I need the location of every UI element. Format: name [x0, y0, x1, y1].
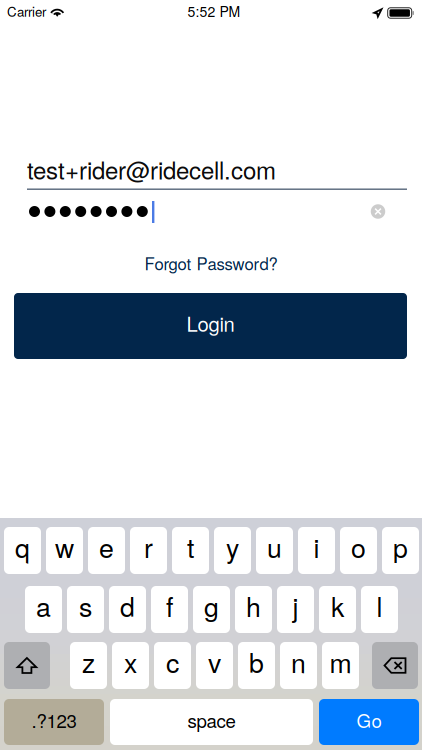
button[interactable]: a — [25, 586, 62, 633]
staticText: h — [246, 586, 261, 625]
button[interactable]: h — [235, 586, 272, 633]
staticText: r — [144, 527, 153, 566]
staticText: y — [226, 527, 239, 566]
staticText: z — [82, 642, 95, 681]
staticText: m — [329, 642, 351, 681]
staticText: l — [376, 586, 382, 625]
button[interactable]: u — [256, 527, 293, 574]
button[interactable]: x — [112, 642, 149, 689]
button[interactable]: z — [70, 642, 107, 689]
button[interactable]: y — [214, 527, 251, 574]
button[interactable]: .?123 — [4, 699, 104, 745]
button[interactable]: l — [361, 586, 398, 633]
staticText: a — [36, 586, 51, 625]
button[interactable]: p — [382, 527, 419, 574]
button[interactable]: r — [130, 527, 167, 574]
button[interactable]: b — [238, 642, 275, 689]
staticText: p — [393, 527, 408, 566]
button[interactable]: c — [154, 642, 191, 689]
button[interactable]: Forgot Password? — [131, 250, 291, 276]
button[interactable]: Delete — [372, 642, 418, 689]
staticText: x — [124, 642, 137, 681]
button[interactable]: Go — [319, 699, 419, 745]
staticText: u — [267, 527, 282, 566]
button[interactable]: e — [88, 527, 125, 574]
staticText: e — [99, 527, 114, 566]
button[interactable]: i — [298, 527, 335, 574]
button[interactable]: s — [67, 586, 104, 633]
button[interactable]: q — [4, 527, 41, 574]
staticText: w — [55, 527, 74, 566]
button[interactable]: v — [196, 642, 233, 689]
staticText: i — [313, 527, 319, 566]
button[interactable]: t — [172, 527, 209, 574]
button[interactable]: n — [280, 642, 317, 689]
staticText: f — [166, 586, 173, 625]
button[interactable]: g — [193, 586, 230, 633]
staticText: Login — [186, 308, 234, 337]
staticText: Forgot Password? — [144, 251, 277, 275]
staticText: n — [291, 642, 306, 681]
staticText: v — [208, 642, 221, 681]
staticText: j — [292, 586, 298, 625]
button[interactable]: Login — [14, 293, 407, 359]
button[interactable]: d — [109, 586, 146, 633]
staticText: q — [15, 527, 30, 566]
staticText: g — [204, 586, 219, 625]
staticText: k — [331, 586, 344, 625]
staticText: c — [166, 642, 179, 681]
staticText: d — [120, 586, 135, 625]
button[interactable]: Shift — [4, 642, 50, 689]
button[interactable]: f — [151, 586, 188, 633]
staticText: o — [351, 527, 366, 566]
staticText: Carrier — [7, 1, 46, 21]
staticText: b — [249, 642, 264, 681]
staticText: Go — [356, 707, 381, 733]
button[interactable]: space — [110, 699, 313, 745]
button[interactable]: k — [319, 586, 356, 633]
button[interactable]: Clear text — [361, 194, 395, 228]
button[interactable]: j — [277, 586, 314, 633]
staticText: t — [187, 527, 194, 566]
button[interactable]: o — [340, 527, 377, 574]
staticText: space — [187, 707, 235, 733]
staticText: test+rider@ridecell.com — [27, 152, 276, 186]
button[interactable]: w — [46, 527, 83, 574]
button[interactable]: m — [322, 642, 359, 689]
staticText: 5:52 PM — [187, 1, 240, 21]
staticText: s — [79, 586, 92, 625]
staticText: .?123 — [31, 707, 76, 733]
